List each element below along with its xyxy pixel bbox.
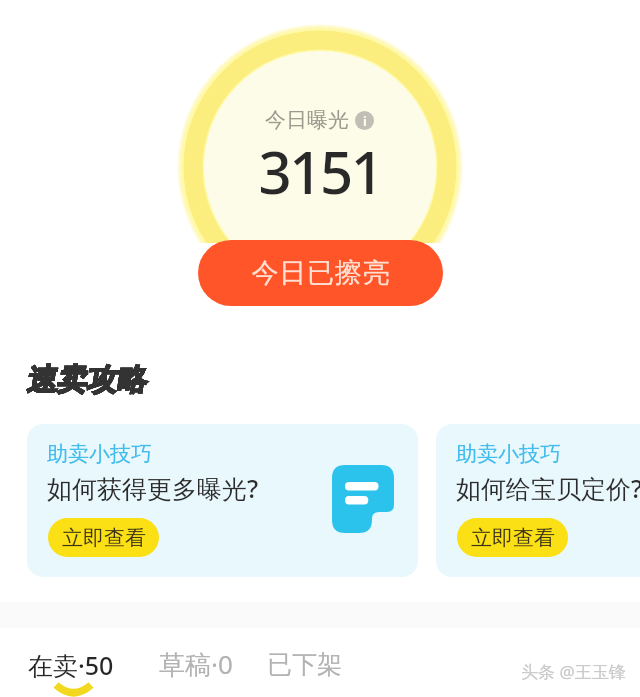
staticText: 今日曝光 [265,107,349,133]
button[interactable]: 立即查看 [48,518,159,557]
button[interactable]: 草稿·0 [159,646,233,682]
staticText: 速卖攻略 [25,361,145,399]
staticText: 草稿·0 [159,646,233,682]
staticText: 头条 @王玉锋 [522,661,627,684]
staticText: 3151 [258,132,382,211]
other: Selling tips [332,465,394,533]
staticText: 已下架 [267,649,342,680]
staticText: 头条 @王玉锋 [521,660,626,683]
staticText: 如何获得更多曝光? [47,471,259,505]
staticText: i [363,112,367,130]
staticText: 速卖攻略 [25,361,145,399]
staticText: 速卖攻略 [25,361,145,399]
staticText: 立即查看 [471,525,555,551]
button[interactable]: 在卖·50 [28,648,114,682]
staticText: 速卖攻略 [25,361,145,399]
button[interactable]: 助卖小技巧 [436,424,640,577]
button[interactable]: 助卖小技巧 [27,424,418,577]
staticText: 速卖攻略 [25,361,145,399]
button[interactable]: 已下架 [267,649,342,680]
staticText: 在卖·50 [28,648,114,682]
staticText: 速卖攻略 [25,361,145,399]
staticText: 助卖小技巧 [47,441,152,467]
staticText: 助卖小技巧 [456,441,561,467]
button[interactable]: What is today's exposure [355,111,374,130]
staticText: 速卖攻略 [25,361,145,399]
staticText: 速卖攻略 [25,361,145,399]
staticText: 立即查看 [62,525,146,551]
button[interactable]: 今日已擦亮 [198,240,443,306]
staticText: 速卖攻略 [25,361,145,399]
button[interactable]: 立即查看 [457,518,568,557]
staticText: 如何给宝贝定价? [456,471,640,505]
staticText: 今日已擦亮 [251,256,390,290]
